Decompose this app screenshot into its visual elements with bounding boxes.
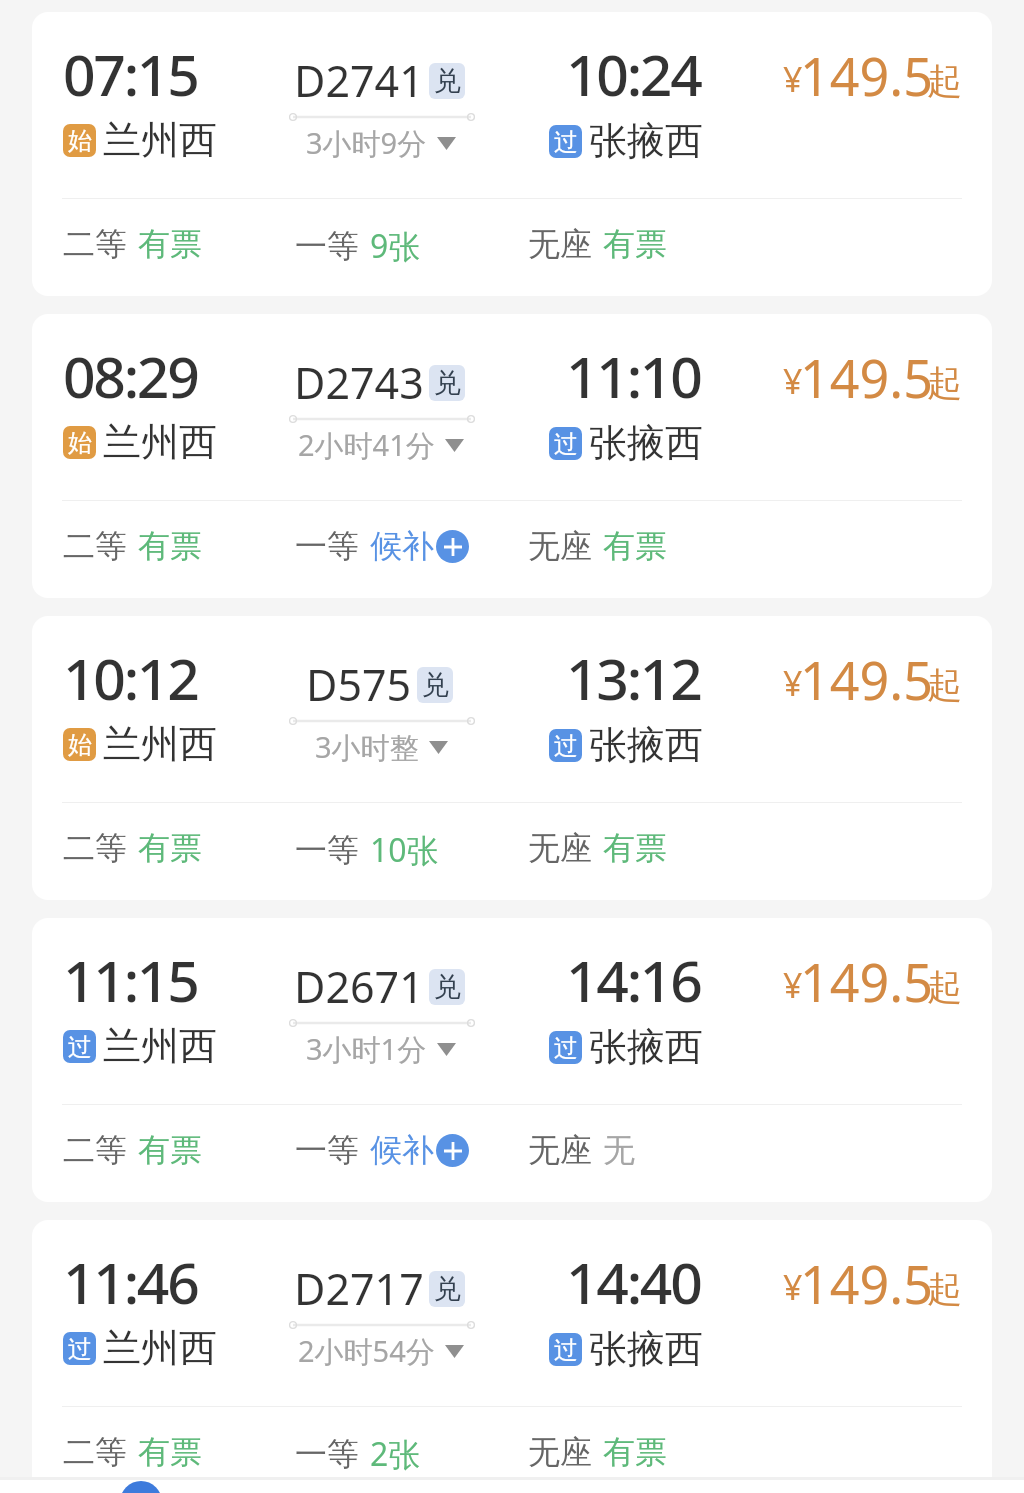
staticText: 149.5 <box>800 342 933 413</box>
staticText: 10:12 <box>63 639 198 717</box>
staticText: 张掖西 <box>589 419 703 467</box>
staticText: 兑 <box>434 1272 461 1306</box>
button[interactable]: 3小时整 <box>193 727 569 767</box>
other: Show stops <box>437 1043 456 1056</box>
staticText: 149.5 <box>800 946 933 1017</box>
staticText: 3小时9分 <box>306 123 427 163</box>
button[interactable]: Locate <box>120 1481 162 1493</box>
staticText: 有票 <box>603 828 667 868</box>
staticText: 兑 <box>422 668 449 702</box>
staticText: 08:29 <box>63 337 198 415</box>
staticText: 兰州西 <box>103 1022 217 1070</box>
other: Show stops <box>445 1345 464 1358</box>
staticText: 二等 <box>63 1432 127 1472</box>
staticText: 兰州西 <box>103 418 217 466</box>
staticText: ¥ <box>783 56 803 102</box>
staticText: 07:15 <box>63 35 198 113</box>
button[interactable]: 2小时54分 <box>193 1331 569 1371</box>
staticText: 起 <box>927 663 962 707</box>
staticText: 张掖西 <box>589 117 703 165</box>
staticText: D2671 <box>294 957 424 1016</box>
staticText: 张掖西 <box>589 721 703 769</box>
button[interactable]: 11:46 <box>32 1220 992 1493</box>
staticText: 起 <box>927 59 962 103</box>
staticText: 过 <box>554 731 578 761</box>
staticText: 候补 <box>370 1130 434 1170</box>
staticText: 11:10 <box>566 337 701 415</box>
staticText: 11:46 <box>63 1243 198 1321</box>
staticText: ¥ <box>783 962 803 1008</box>
staticText: 始 <box>68 428 92 458</box>
staticText: 149.5 <box>800 1248 933 1319</box>
staticText: 起 <box>927 361 962 405</box>
staticText: 二等 <box>63 1130 127 1170</box>
staticText: 无座 <box>528 828 592 868</box>
staticText: 二等 <box>63 526 127 566</box>
staticText: 无座 <box>528 1432 592 1472</box>
staticText: 张掖西 <box>589 1023 703 1071</box>
staticText: 过 <box>554 127 578 157</box>
staticText: 13:12 <box>566 639 701 717</box>
staticText: 14:40 <box>566 1243 701 1321</box>
staticText: 一等 <box>295 226 359 266</box>
staticText: ¥ <box>783 358 803 404</box>
staticText: 10张 <box>370 828 439 872</box>
staticText: 2小时41分 <box>298 425 435 465</box>
button[interactable]: 07:15 <box>32 12 992 296</box>
other: Show stops <box>429 741 448 754</box>
staticText: 无座 <box>528 526 592 566</box>
staticText: 有票 <box>138 828 202 868</box>
staticText: 3小时1分 <box>306 1029 427 1069</box>
button[interactable]: 08:29 <box>32 314 992 598</box>
staticText: 14:16 <box>566 941 701 1019</box>
staticText: 兰州西 <box>103 720 217 768</box>
other: Show stops <box>437 137 456 150</box>
staticText: 候补 <box>370 526 434 566</box>
staticText: 兰州西 <box>103 116 217 164</box>
staticText: D2741 <box>294 51 424 110</box>
staticText: 有票 <box>603 1432 667 1472</box>
staticText: 有票 <box>603 526 667 566</box>
staticText: 过 <box>554 1335 578 1365</box>
staticText: 无座 <box>528 1130 592 1170</box>
button[interactable]: Add to waitlist <box>436 1134 469 1167</box>
staticText: 149.5 <box>800 644 933 715</box>
staticText: 过 <box>68 1032 92 1062</box>
staticText: 起 <box>927 965 962 1009</box>
staticText: 一等 <box>295 1130 359 1170</box>
staticText: D2717 <box>294 1259 424 1318</box>
staticText: 有票 <box>138 1432 202 1472</box>
staticText: 3小时整 <box>315 727 419 767</box>
staticText: 无座 <box>528 224 592 264</box>
staticText: ¥ <box>783 1264 803 1310</box>
staticText: 一等 <box>295 830 359 870</box>
staticText: 兑 <box>434 366 461 400</box>
button[interactable]: 3小时9分 <box>193 123 569 163</box>
staticText: 兑 <box>434 970 461 1004</box>
staticText: 过 <box>554 429 578 459</box>
staticText: 兑 <box>434 64 461 98</box>
button[interactable]: 3小时1分 <box>193 1029 569 1069</box>
staticText: 兰州西 <box>103 1324 217 1372</box>
staticText: 149.5 <box>800 40 933 111</box>
staticText: 二等 <box>63 224 127 264</box>
button[interactable]: Add to waitlist <box>436 530 469 563</box>
staticText: 有票 <box>603 224 667 264</box>
staticText: 一等 <box>295 1434 359 1474</box>
staticText: D575 <box>306 655 412 714</box>
staticText: 始 <box>68 730 92 760</box>
button[interactable]: 2小时41分 <box>193 425 569 465</box>
staticText: 2张 <box>370 1432 421 1476</box>
staticText: 始 <box>68 126 92 156</box>
staticText: 过 <box>68 1334 92 1364</box>
staticText: 11:15 <box>63 941 198 1019</box>
staticText: D2743 <box>294 353 424 412</box>
button[interactable]: 10:12 <box>32 616 992 900</box>
staticText: 一等 <box>295 526 359 566</box>
staticText: 二等 <box>63 828 127 868</box>
button[interactable]: 11:15 <box>32 918 992 1202</box>
staticText: 起 <box>927 1267 962 1311</box>
staticText: 2小时54分 <box>298 1331 435 1371</box>
staticText: ¥ <box>783 660 803 706</box>
staticText: 无 <box>603 1130 635 1170</box>
